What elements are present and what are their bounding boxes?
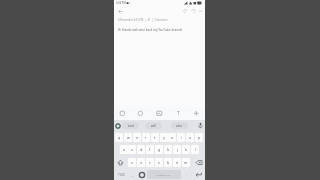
staticText: u	[171, 135, 174, 140]
staticText: p	[198, 135, 201, 140]
staticText: and	[128, 124, 134, 128]
staticText: k	[185, 147, 187, 152]
button[interactable]: s	[128, 145, 136, 154]
staticText: f	[149, 147, 151, 152]
staticText: j	[177, 147, 178, 152]
button[interactable]: h	[164, 145, 172, 154]
button[interactable]: also	[171, 122, 188, 129]
staticText: m	[184, 160, 188, 165]
button[interactable]: p	[195, 133, 203, 142]
button[interactable]	[182, 7, 189, 15]
staticText: 4 November 6:52 PM | 41 | Characters	[118, 18, 168, 22]
button[interactable]: u	[168, 133, 176, 142]
button[interactable]: r	[142, 133, 150, 142]
staticText: English (US)	[157, 173, 171, 176]
button[interactable]: g	[155, 145, 163, 154]
button[interactable]: z	[128, 158, 136, 167]
button[interactable]	[156, 110, 163, 117]
staticText: n	[176, 160, 179, 165]
staticText: c	[149, 160, 151, 165]
staticText: v	[158, 160, 160, 165]
button[interactable]	[190, 7, 197, 15]
button[interactable]: y	[160, 133, 168, 142]
button[interactable]: T	[174, 109, 182, 118]
button[interactable]: a	[120, 145, 128, 154]
staticText: will	[151, 124, 156, 128]
button[interactable]	[115, 158, 126, 167]
button[interactable]: ,	[129, 170, 136, 179]
staticText: e	[136, 135, 139, 140]
staticText: ,	[132, 172, 134, 177]
button[interactable]: will	[145, 122, 162, 129]
button[interactable]: and	[122, 122, 139, 129]
staticText: d	[140, 147, 143, 152]
button[interactable]: o	[186, 133, 194, 142]
button[interactable]: x	[137, 158, 145, 167]
button[interactable]	[137, 170, 146, 179]
staticText: s	[131, 147, 133, 152]
button[interactable]	[197, 122, 204, 129]
button[interactable]: j	[173, 145, 181, 154]
staticText: .	[186, 172, 188, 177]
button[interactable]: English (US)	[147, 170, 181, 179]
staticText: y	[163, 135, 165, 140]
button[interactable]	[193, 110, 200, 117]
button[interactable]	[193, 158, 204, 167]
button[interactable]: ?123	[115, 170, 127, 179]
staticText: b	[167, 160, 170, 165]
button[interactable]: k	[182, 145, 190, 154]
button[interactable]: q	[115, 133, 123, 142]
staticText: x	[140, 160, 142, 165]
button[interactable]: b	[164, 158, 172, 167]
button[interactable]: l	[191, 145, 199, 154]
staticText: 6:04 PM ■ ♪	[116, 1, 132, 5]
button[interactable]: v	[155, 158, 163, 167]
staticText: g	[158, 147, 161, 152]
staticText: ?123	[118, 173, 125, 177]
button[interactable]	[137, 110, 144, 117]
button[interactable]	[116, 7, 125, 16]
staticText: Hi friends welcome back my YouTube chann…	[118, 28, 183, 32]
button[interactable]: f	[146, 145, 154, 154]
button[interactable]: i	[177, 133, 185, 142]
staticText: i	[181, 135, 182, 140]
staticText: h	[167, 147, 170, 152]
staticText: t	[154, 135, 156, 140]
staticText: also	[176, 124, 183, 128]
staticText: w	[127, 135, 130, 140]
button[interactable]: m	[182, 158, 190, 167]
staticText: r	[145, 135, 147, 140]
button[interactable]: d	[137, 145, 145, 154]
staticText: o	[189, 135, 192, 140]
button[interactable]	[197, 7, 204, 15]
button[interactable]: c	[146, 158, 154, 167]
button[interactable]: w	[124, 133, 132, 142]
button[interactable]: n	[173, 158, 181, 167]
button[interactable]	[193, 170, 204, 179]
staticText: a	[123, 147, 126, 152]
staticText: z	[131, 160, 133, 165]
staticText: T	[177, 110, 180, 117]
button[interactable]	[119, 110, 126, 117]
button[interactable]	[115, 123, 121, 129]
staticText: l	[195, 147, 196, 152]
button[interactable]: e	[133, 133, 141, 142]
button[interactable]: t	[151, 133, 159, 142]
staticText: q	[118, 135, 121, 140]
